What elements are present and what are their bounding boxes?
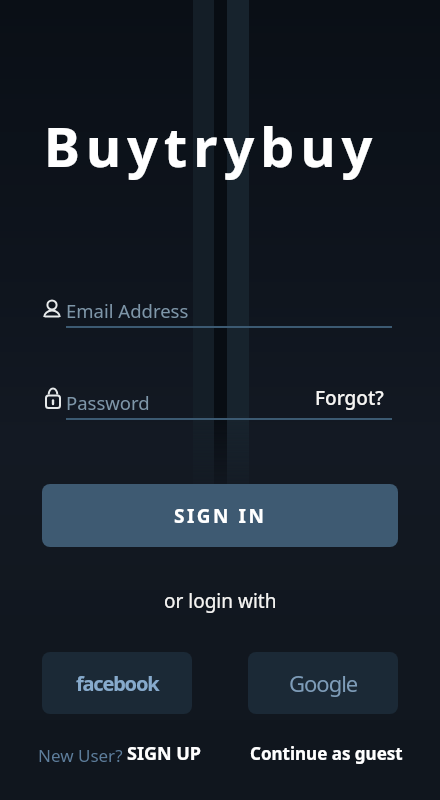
button[interactable]: facebook xyxy=(42,652,192,714)
staticText: or login with xyxy=(164,588,277,614)
staticText: Forgot? xyxy=(315,385,384,411)
button[interactable]: SIGN UP xyxy=(127,740,202,766)
staticText: Buytrybuy xyxy=(44,109,379,183)
button[interactable]: Continue as guest xyxy=(250,740,403,766)
button[interactable]: Forgot? xyxy=(300,384,384,412)
staticText: Password xyxy=(66,390,150,415)
button[interactable]: Email Address xyxy=(38,292,398,332)
staticText: New User? xyxy=(38,744,123,767)
staticText: Google xyxy=(289,668,358,698)
button[interactable]: SIGN IN xyxy=(42,484,398,547)
button[interactable]: Google xyxy=(248,652,398,714)
staticText: facebook xyxy=(76,670,159,697)
staticText: SIGN IN xyxy=(174,503,267,529)
staticText: Continue as guest xyxy=(250,742,403,765)
staticText: Email Address xyxy=(66,298,189,323)
button[interactable]: Password xyxy=(38,384,398,424)
staticText: SIGN UP xyxy=(127,741,202,766)
